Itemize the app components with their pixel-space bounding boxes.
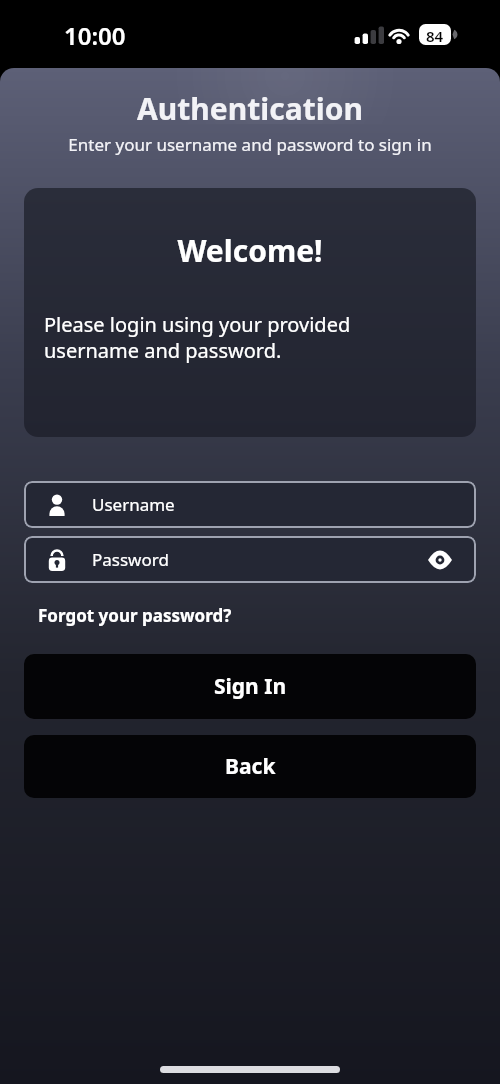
button[interactable]: Username xyxy=(24,481,476,528)
staticText: Please login using your provided usernam… xyxy=(44,311,351,364)
button[interactable]: Password xyxy=(24,536,476,583)
staticText: 10:00 xyxy=(64,19,126,52)
staticText: Enter your username and password to sign… xyxy=(24,133,476,156)
button[interactable]: Back xyxy=(24,735,476,798)
staticText: Username xyxy=(92,493,175,516)
staticText: Authentication xyxy=(24,88,476,129)
staticText: Password xyxy=(92,548,169,571)
button[interactable]: Sign In xyxy=(24,654,476,719)
button[interactable] xyxy=(425,545,455,575)
staticText: Welcome! xyxy=(24,230,476,271)
staticText: Sign In xyxy=(214,672,287,701)
staticText: Back xyxy=(225,752,276,781)
button[interactable]: Forgot your password? xyxy=(38,604,232,627)
staticText: 84 xyxy=(426,26,444,46)
